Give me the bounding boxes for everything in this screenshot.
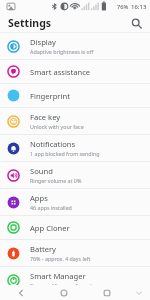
button[interactable]: Sound (0, 162, 150, 188)
button[interactable]: Apps (0, 189, 150, 215)
staticText: Storage, Memory, Security (30, 282, 96, 285)
staticText: 76% (117, 3, 129, 11)
staticText: Adaptive brightness is off (30, 48, 94, 55)
staticText: Display (30, 37, 56, 47)
button[interactable]: Display (0, 33, 150, 59)
staticText: 76% - approx. 4 days left (30, 255, 91, 262)
button[interactable]: App Cloner (0, 216, 150, 239)
button[interactable]: Smart assistance (0, 60, 150, 83)
button[interactable]: Back (0, 285, 42, 300)
button[interactable]: Hide navigation bar (128, 285, 150, 300)
staticText: 1 app blocked from sending (30, 150, 100, 157)
button[interactable]: Search (128, 15, 144, 31)
staticText: App Cloner (30, 223, 70, 233)
staticText: 16:13 (131, 3, 147, 11)
staticText: Smart Manager (30, 271, 86, 281)
staticText: Notifications (30, 139, 76, 149)
staticText: Settings (8, 16, 52, 30)
staticText: Face key (30, 112, 61, 122)
staticText: Battery (30, 244, 56, 254)
button[interactable]: Battery (0, 240, 150, 266)
staticText: Smart assistance (30, 67, 91, 77)
button[interactable]: Notifications (0, 135, 150, 161)
button[interactable]: Recent apps (85, 285, 128, 300)
staticText: Sound (30, 166, 53, 176)
staticText: 46 apps installed (30, 204, 72, 211)
staticText: Apps (30, 193, 48, 203)
staticText: Fingerprint (30, 91, 70, 101)
button[interactable]: Face key (0, 108, 150, 134)
button[interactable]: Home (42, 285, 85, 300)
staticText: Unlock with your face (30, 123, 84, 130)
staticText: Ringer volume at 0% (30, 177, 82, 184)
button[interactable]: Smart Manager (0, 267, 150, 285)
button[interactable]: Fingerprint (0, 84, 150, 107)
